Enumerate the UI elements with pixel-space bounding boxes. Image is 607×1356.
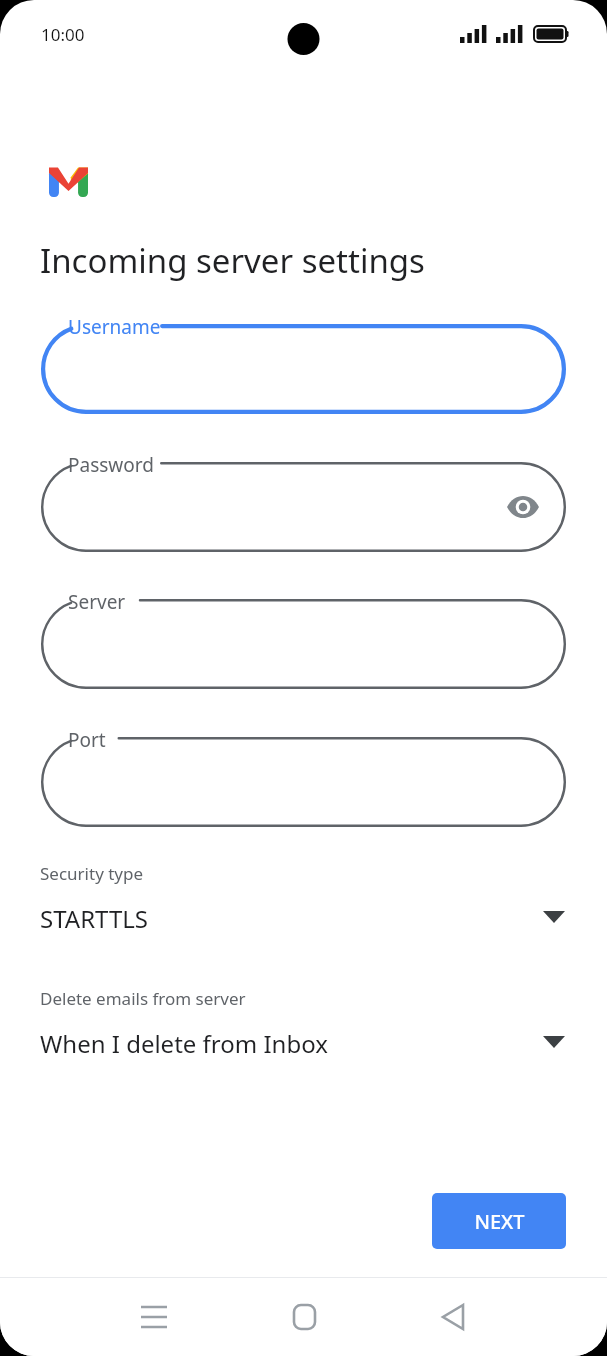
button[interactable]: Password [41,462,566,552]
staticText: Username [68,314,161,340]
staticText: NEXT [474,1208,525,1235]
button[interactable]: Username [41,324,566,414]
button[interactable]: Server [41,599,566,689]
staticText: Security type [40,862,144,885]
staticText: Incoming server settings [40,238,425,283]
staticText: STARTTLS [40,902,149,935]
staticText: 10:00 [41,23,85,46]
staticText: Delete emails from server [40,987,246,1010]
staticText: When I delete from Inbox [40,1027,328,1060]
button[interactable]: Show password [495,479,551,535]
button[interactable]: Recent apps [120,1283,188,1351]
button[interactable]: Port [41,737,566,827]
button[interactable]: Security type [40,862,567,960]
staticText: Password [68,452,154,478]
button[interactable]: Back [419,1283,487,1351]
staticText: Server [68,589,126,615]
staticText: Port [68,727,106,753]
button[interactable]: Delete emails from server [40,987,567,1085]
button[interactable]: NEXT [432,1193,566,1249]
button[interactable]: Home [270,1283,338,1351]
